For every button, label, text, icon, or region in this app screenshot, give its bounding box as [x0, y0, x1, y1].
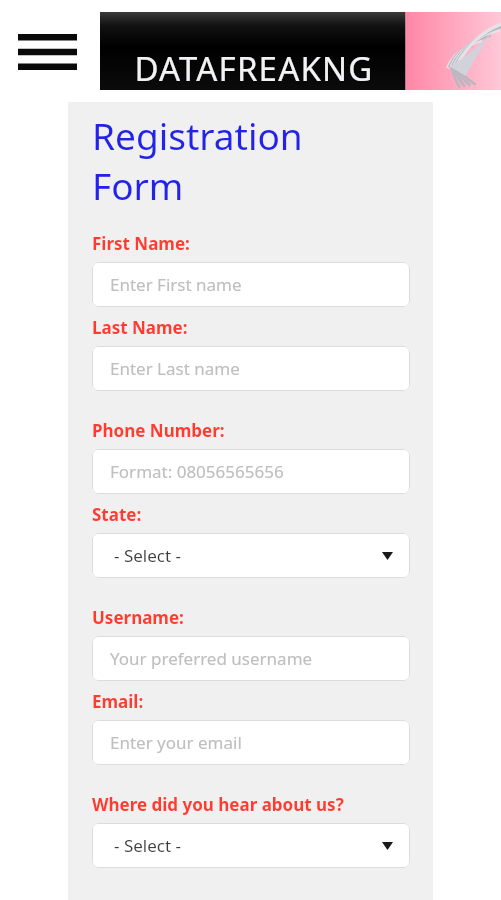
staticText: Your preferred username — [110, 647, 313, 670]
staticText: Enter your email — [110, 731, 242, 754]
staticText: Username: — [92, 606, 184, 629]
staticText: Format: 08056565656 — [110, 460, 284, 483]
staticText: Where did you hear about us? — [92, 793, 344, 816]
button[interactable]: DataFreakNG logo — [100, 12, 501, 90]
staticText: - Select - — [114, 834, 181, 857]
staticText: Email: — [92, 690, 144, 713]
button[interactable]: Enter your email — [92, 720, 410, 765]
staticText: DATAFREAKNG — [104, 46, 404, 91]
button[interactable]: Select an option — [92, 533, 410, 578]
staticText: First Name: — [92, 232, 190, 255]
staticText: Last Name: — [92, 316, 188, 339]
button[interactable]: Open navigation menu — [12, 28, 82, 76]
staticText: Enter First name — [110, 273, 242, 296]
button[interactable]: Select an option — [92, 823, 410, 868]
staticText: Phone Number: — [92, 419, 225, 442]
staticText: Enter Last name — [110, 357, 240, 380]
button[interactable]: Enter First name — [92, 262, 410, 307]
staticText: State: — [92, 503, 142, 526]
staticText: Registration — [92, 110, 303, 160]
button[interactable]: Format: 08056565656 — [92, 449, 410, 494]
button[interactable]: Your preferred username — [92, 636, 410, 681]
staticText: - Select - — [114, 544, 181, 567]
staticText: Form — [92, 160, 184, 210]
button[interactable]: Enter Last name — [92, 346, 410, 391]
